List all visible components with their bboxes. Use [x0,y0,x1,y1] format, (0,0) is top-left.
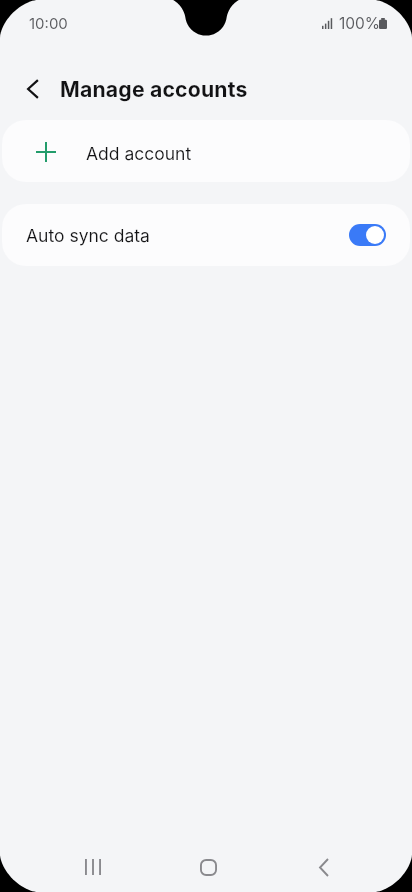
button[interactable]: Navigate up [13,69,53,109]
button[interactable]: Recent apps [69,843,117,891]
staticText: Auto sync data [26,225,150,246]
staticText: Manage accounts [60,76,248,102]
staticText: 10:00 [29,14,68,32]
button[interactable]: Auto sync data toggle [349,224,386,246]
staticText: 100% [339,14,381,33]
button[interactable]: Back [300,843,348,891]
button[interactable]: Auto sync data [2,204,410,266]
button[interactable]: Home [184,843,232,891]
button[interactable]: Add account [2,120,410,182]
staticText: Add account [86,143,192,164]
